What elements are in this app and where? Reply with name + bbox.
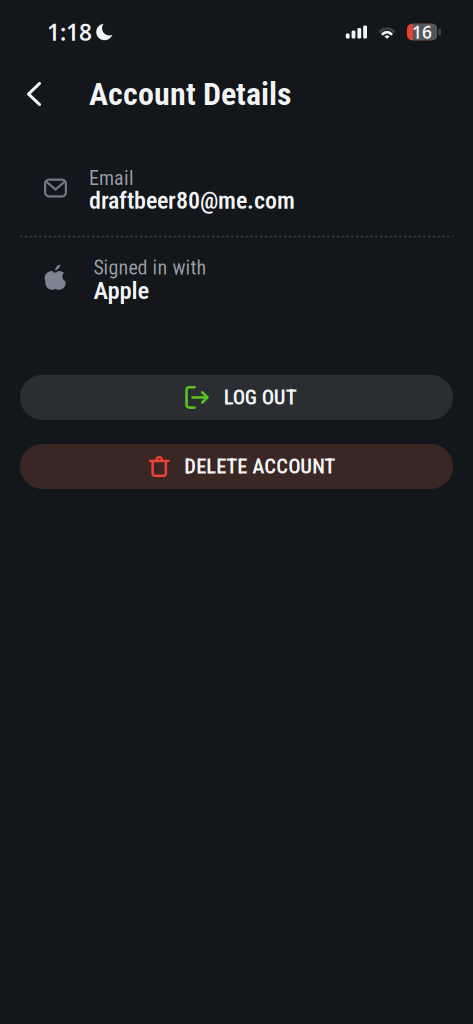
staticText: Apple — [93, 276, 149, 305]
button[interactable]: Back — [27, 82, 41, 106]
staticText: Email — [89, 166, 134, 190]
staticText: 16 — [412, 20, 432, 43]
button[interactable]: DELETE ACCOUNT — [20, 444, 453, 489]
staticText: DELETE ACCOUNT — [184, 454, 335, 478]
button[interactable]: LOG OUT — [20, 375, 453, 420]
staticText: Account Details — [89, 75, 292, 113]
staticText: 1:18 — [47, 17, 92, 47]
staticText: LOG OUT — [224, 385, 297, 409]
staticText: draftbeer80@me.com — [89, 186, 295, 214]
staticText: Signed in with — [93, 256, 206, 279]
